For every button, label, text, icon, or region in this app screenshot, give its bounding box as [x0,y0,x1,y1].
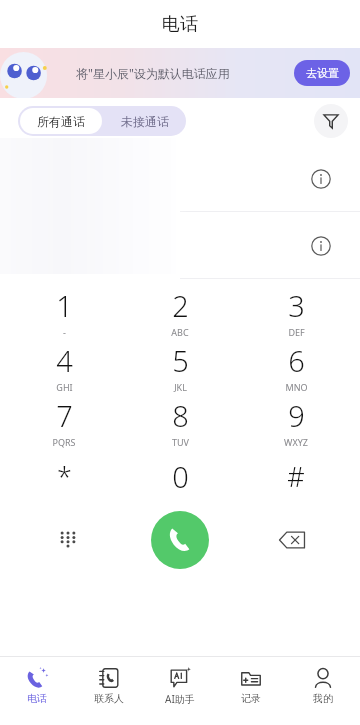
staticText: 8 [172,396,189,435]
button[interactable]: 2 [128,284,232,339]
staticText: 0 [172,457,189,496]
staticText: 我的 [313,692,333,705]
button[interactable]: 7 [12,394,116,449]
button[interactable]: 3 [244,284,348,339]
button[interactable]: 记录 [217,657,285,715]
staticText: - [63,326,66,338]
button[interactable]: Backspace [270,518,314,562]
button[interactable]: 1 [12,284,116,339]
button[interactable]: Call details [0,213,360,279]
button[interactable]: Hide keypad [48,520,88,560]
staticText: 将"星小辰"设为默认电话应用 [76,65,230,81]
staticText: GHI [56,381,73,393]
button[interactable]: 0 [128,449,232,503]
staticText: 1 [56,286,73,325]
button[interactable]: 联系人 [75,657,143,715]
staticText: TUV [172,436,189,448]
staticText: 2 [172,286,189,325]
button[interactable]: 9 [244,394,348,449]
staticText: 去设置 [306,66,339,80]
button[interactable]: 5 [128,339,232,394]
button[interactable]: * [12,449,116,503]
staticText: PQRS [52,436,76,448]
staticText: 9 [288,396,305,435]
button[interactable]: Filter [314,104,348,138]
button[interactable]: 未接通话 [104,108,186,134]
button[interactable]: 我的 [289,657,357,715]
button[interactable]: 去设置 [294,60,350,86]
staticText: DEF [288,326,305,338]
button[interactable]: Call details [0,146,360,212]
staticText: 记录 [241,692,261,705]
staticText: JKL [174,381,187,393]
staticText: 所有通话 [37,114,85,129]
button[interactable]: # [244,449,348,503]
button[interactable]: 4 [12,339,116,394]
staticText: 联系人 [94,692,124,705]
button[interactable]: 所有通话 [20,108,102,134]
staticText: 7 [56,396,73,435]
staticText: 未接通话 [121,114,169,129]
staticText: 电话 [27,692,47,705]
button[interactable]: 6 [244,339,348,394]
staticText: WXYZ [284,436,308,448]
button[interactable]: 8 [128,394,232,449]
staticText: AI助手 [165,692,195,706]
staticText: 5 [172,341,189,380]
staticText: MNO [285,381,308,393]
staticText: 6 [288,341,305,380]
staticText: * [57,458,72,495]
staticText: ABC [171,326,189,338]
button[interactable]: Call [151,511,209,569]
button[interactable]: Call details [308,166,334,192]
button[interactable]: 电话 [3,657,71,715]
button[interactable]: AI助手 [146,657,214,715]
staticText: 4 [56,341,73,380]
button[interactable]: Call details [308,233,334,259]
staticText: 电话 [162,13,198,36]
button[interactable]: 将"星小辰"设为默认电话应用 [0,48,360,98]
staticText: # [287,458,305,495]
staticText: 3 [288,286,305,325]
